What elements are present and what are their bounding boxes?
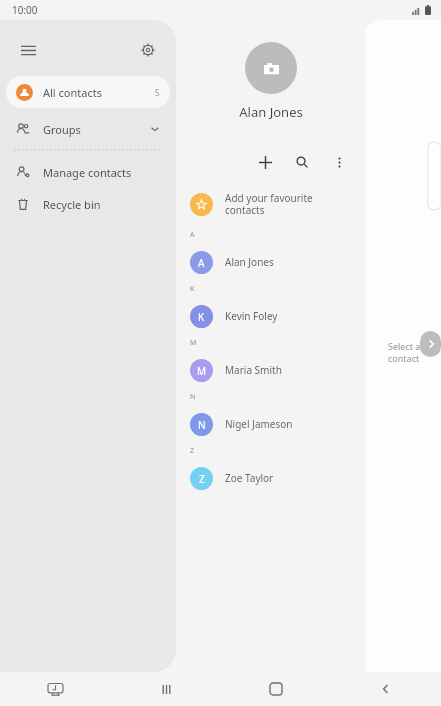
staticText: All contacts [43, 85, 102, 100]
button[interactable]: Manage contacts [0, 156, 176, 188]
button[interactable]: Groups [0, 113, 176, 145]
button[interactable]: Add contact [252, 149, 278, 175]
button[interactable]: Back [331, 672, 441, 706]
button[interactable]: Home [221, 672, 331, 706]
button[interactable]: M [176, 353, 366, 387]
staticText: Nigel Jameson [225, 417, 293, 431]
staticText: K [190, 284, 195, 294]
staticText: Alan Jones [225, 255, 274, 269]
staticText: Select a contact [388, 340, 441, 364]
button[interactable]: Settings [134, 36, 162, 64]
staticText: 5 [155, 87, 160, 98]
staticText: Groups [43, 122, 81, 137]
button[interactable]: Resize panes [420, 331, 441, 357]
button[interactable]: Z [176, 461, 366, 495]
staticText: Recycle bin [43, 197, 101, 212]
button[interactable]: All contacts [6, 76, 170, 108]
staticText: K [198, 310, 205, 324]
staticText: Kevin Foley [225, 309, 278, 323]
button[interactable]: Recents [111, 672, 221, 706]
staticText: Zoe Taylor [225, 471, 274, 485]
staticText: Add your favourite contacts [225, 191, 313, 217]
button[interactable]: N [176, 407, 366, 441]
staticText: N [190, 392, 196, 402]
button[interactable]: More options [326, 149, 352, 175]
staticText: N [198, 418, 206, 432]
button[interactable]: Recycle bin [0, 188, 176, 220]
staticText: A [198, 256, 205, 270]
button[interactable]: Screenshot [0, 672, 111, 706]
staticText: Maria Smith [225, 363, 282, 377]
staticText: M [190, 338, 197, 348]
button[interactable]: K [176, 299, 366, 333]
button[interactable]: Profile photo [245, 42, 297, 94]
staticText: 10:00 [12, 3, 38, 17]
staticText: Manage contacts [43, 165, 132, 180]
button[interactable]: Add your favourite contacts [176, 183, 366, 225]
staticText: Z [199, 472, 205, 486]
staticText: A [190, 230, 195, 240]
staticText: Alan Jones [239, 103, 303, 121]
staticText: M [197, 364, 207, 378]
button[interactable]: Search [289, 149, 315, 175]
staticText: Z [190, 446, 195, 456]
button[interactable]: Menu [14, 36, 42, 64]
button[interactable]: A [176, 245, 366, 279]
